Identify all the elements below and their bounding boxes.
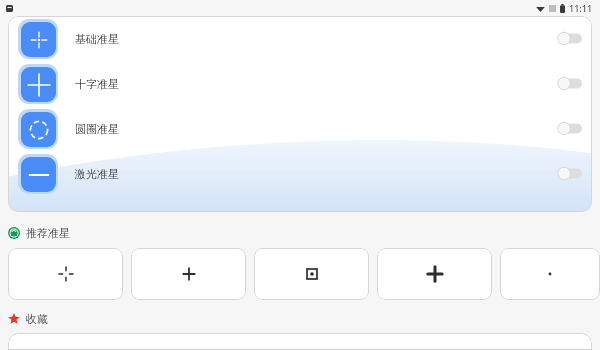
- button[interactable]: Crosshair preset 2: [131, 248, 246, 300]
- staticText: 收藏: [26, 312, 48, 326]
- button[interactable]: Crosshair preset 3: [254, 248, 369, 300]
- button[interactable]: 基础准星: [8, 16, 592, 61]
- button[interactable]: Toggle crosshair: [556, 31, 582, 46]
- button[interactable]: Crosshair preset 4: [377, 248, 492, 300]
- button[interactable]: 圆圈准星: [8, 106, 592, 151]
- staticText: 11:11: [569, 2, 593, 14]
- button[interactable]: 收藏: [8, 312, 600, 326]
- button[interactable]: Crosshair preset 1: [8, 248, 123, 300]
- button[interactable]: 十字准星: [8, 61, 592, 106]
- button[interactable]: 激光准星: [8, 151, 592, 196]
- button[interactable]: Crosshair preset 5: [500, 248, 600, 300]
- button[interactable]: 推荐准星: [8, 226, 600, 240]
- button[interactable]: Toggle crosshair: [556, 121, 582, 136]
- staticText: 十字准星: [75, 77, 119, 91]
- staticText: 圆圈准星: [75, 122, 119, 136]
- button[interactable]: Toggle crosshair: [556, 76, 582, 91]
- staticText: 激光准星: [75, 167, 119, 181]
- staticText: 推荐准星: [26, 226, 70, 240]
- staticText: 基础准星: [75, 32, 119, 46]
- button[interactable]: Toggle crosshair: [556, 166, 582, 181]
- button[interactable]: [8, 333, 592, 350]
